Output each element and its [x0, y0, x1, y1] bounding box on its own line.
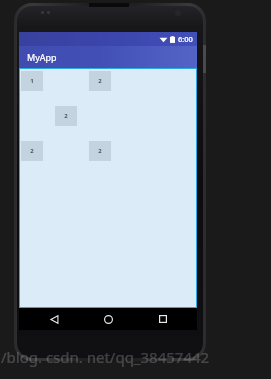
button[interactable]: Back [34, 308, 74, 330]
staticText: 2 [64, 112, 68, 120]
staticText: MyApp [27, 51, 57, 63]
button[interactable]: 2 [89, 141, 111, 161]
button[interactable]: 2 [89, 71, 111, 91]
staticText: 2 [98, 147, 102, 155]
staticText: 2 [98, 77, 102, 85]
staticText: 1 [30, 77, 34, 85]
staticText: /blog. csdn. net/qq_38457442 [1, 347, 210, 367]
button[interactable]: 1 [21, 71, 43, 91]
button[interactable]: 2 [21, 141, 43, 161]
button[interactable]: 2 [55, 106, 77, 126]
staticText: 6:00 [178, 34, 193, 44]
button[interactable]: Home [88, 308, 128, 330]
button[interactable]: Recent apps [143, 308, 183, 330]
staticText: 2 [30, 147, 34, 155]
